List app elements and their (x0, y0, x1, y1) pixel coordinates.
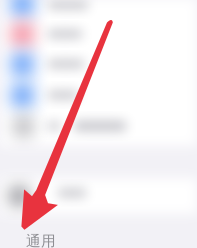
staticText: 通用 (26, 232, 56, 248)
